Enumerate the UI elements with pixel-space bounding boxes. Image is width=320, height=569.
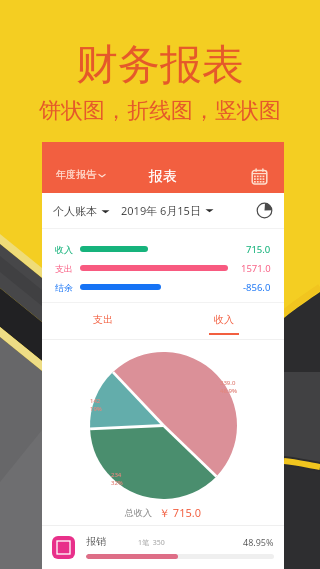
staticText: 142 19%	[90, 397, 102, 413]
staticText: 总收入	[125, 507, 152, 518]
staticText: 个人账本	[53, 204, 97, 218]
staticText: 报表	[149, 168, 177, 186]
staticText: 2019年 6月15日	[121, 203, 201, 218]
staticText: 报销	[86, 535, 106, 548]
staticText: 财务报表	[76, 39, 244, 92]
staticText: 1笔 350	[138, 538, 165, 548]
staticText: 1571.0	[241, 262, 271, 275]
staticText: 年度报告	[56, 168, 96, 181]
staticText: 48.95%	[243, 536, 274, 548]
button[interactable]: 2019年 6月15日	[121, 203, 214, 218]
staticText: 饼状图，折线图，竖状图	[39, 97, 281, 125]
staticText: 715.0	[246, 243, 271, 256]
button[interactable]: 收入	[163, 303, 284, 341]
button[interactable]: 个人账本	[53, 204, 110, 218]
staticText: ￥ 715.0	[159, 505, 201, 520]
staticText: 收入	[214, 313, 234, 326]
staticText: 结余	[55, 282, 73, 293]
staticText: 339.0 48.9%	[220, 379, 237, 395]
button[interactable]: 报销	[42, 526, 284, 568]
staticText: 收入	[55, 244, 73, 255]
button[interactable]: Calendar	[251, 168, 268, 185]
staticText: 支出	[93, 313, 113, 326]
button[interactable]: 支出	[42, 303, 163, 341]
button[interactable]: Pie chart view	[256, 202, 273, 219]
staticText: 234 32%	[111, 471, 123, 487]
button[interactable]: 年度报告	[56, 168, 106, 181]
staticText: -856.0	[243, 281, 271, 294]
staticText: 支出	[55, 263, 73, 274]
